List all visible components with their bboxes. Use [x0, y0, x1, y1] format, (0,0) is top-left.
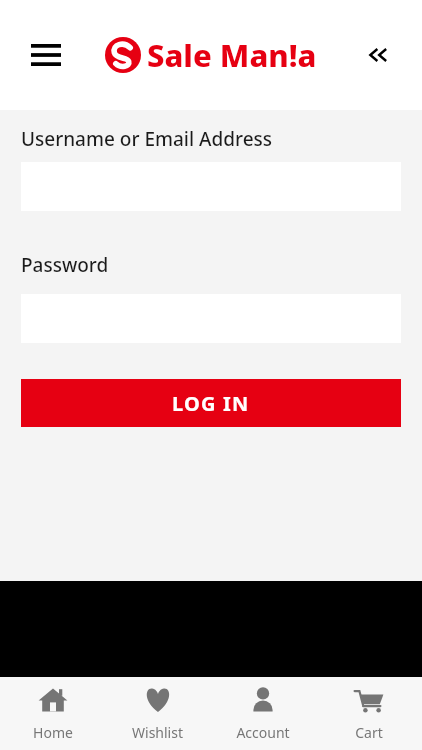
button[interactable]: Account [210, 677, 316, 750]
button[interactable]: LOG IN [21, 379, 401, 427]
staticText: Sale Man!a [147, 34, 317, 76]
staticText: LOG IN [172, 390, 250, 417]
staticText: Home [33, 723, 73, 742]
button[interactable]: Home [0, 677, 105, 750]
staticText: Cart [355, 723, 383, 742]
staticText: Account [236, 723, 290, 742]
button[interactable]: Menu [22, 31, 70, 79]
staticText: Password [21, 252, 109, 278]
button[interactable]: Back [358, 33, 402, 77]
button[interactable]: Wishlist [105, 677, 210, 750]
staticText: Username or Email Address [21, 126, 273, 152]
button[interactable]: Cart [316, 677, 422, 750]
staticText: Wishlist [132, 723, 183, 742]
